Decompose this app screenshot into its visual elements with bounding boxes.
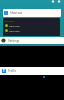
- staticText: Options: [5, 19, 15, 22]
- button[interactable]: Item one: [5, 24, 20, 27]
- button[interactable]: T: [0, 67, 64, 75]
- button[interactable]: Settings: [0, 37, 64, 44]
- staticText: Trello: [8, 69, 16, 73]
- button[interactable]: Item two: [5, 29, 20, 32]
- staticText: T: [3, 69, 5, 73]
- staticText: Item two: [9, 29, 20, 32]
- staticText: Shortcut: [10, 11, 23, 15]
- staticText: Settings: [8, 39, 20, 43]
- button[interactable]: Shortcut: [3, 9, 61, 17]
- staticText: Item one: [9, 24, 20, 27]
